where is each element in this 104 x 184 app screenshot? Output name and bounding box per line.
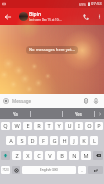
staticText: H bbox=[62, 137, 67, 145]
button[interactable]: M bbox=[81, 151, 91, 160]
staticText: 69% bbox=[79, 2, 87, 7]
staticText: R bbox=[37, 122, 41, 130]
button[interactable]: Q bbox=[1, 122, 10, 130]
staticText: W bbox=[14, 122, 20, 130]
staticText: S bbox=[20, 137, 24, 145]
button[interactable]: Profile photo bbox=[19, 12, 28, 21]
staticText: last seen Dec 15 at 10:... bbox=[29, 18, 62, 22]
staticText: Bipin bbox=[29, 11, 42, 18]
button[interactable]: Attach bbox=[81, 96, 91, 106]
staticText: Message bbox=[12, 98, 32, 104]
staticText: L bbox=[93, 137, 96, 145]
staticText: P bbox=[97, 122, 101, 130]
button[interactable]: Call bbox=[80, 11, 92, 23]
button[interactable]: Z bbox=[12, 151, 21, 160]
staticText: ?123 bbox=[2, 168, 9, 172]
button[interactable]: C bbox=[34, 151, 43, 160]
button[interactable]: Ya bbox=[0, 108, 30, 119]
button[interactable]: J bbox=[70, 136, 78, 145]
staticText: V bbox=[48, 152, 52, 160]
button[interactable]: P bbox=[95, 122, 103, 130]
button[interactable]: K bbox=[80, 136, 88, 145]
staticText: A bbox=[9, 137, 13, 145]
button[interactable]: More options bbox=[94, 8, 104, 25]
button[interactable]: No messages here yet... bbox=[26, 46, 78, 54]
staticText: 07:53 bbox=[91, 1, 102, 7]
button[interactable]: D bbox=[28, 136, 37, 145]
button[interactable]: Back bbox=[0, 8, 16, 25]
button[interactable]: Enter bbox=[88, 166, 103, 174]
staticText: O bbox=[87, 122, 92, 130]
staticText: E bbox=[26, 122, 30, 130]
button[interactable]: Backspace bbox=[93, 151, 103, 160]
button[interactable]: Yes bbox=[63, 108, 94, 119]
staticText: B bbox=[60, 152, 64, 160]
staticText: English (UK) bbox=[40, 168, 58, 172]
staticText: T bbox=[47, 122, 51, 130]
button[interactable]: . bbox=[78, 166, 86, 174]
button[interactable]: N bbox=[69, 151, 79, 160]
button[interactable]: I bbox=[75, 122, 83, 130]
button[interactable]: Shift bbox=[1, 151, 10, 160]
staticText: N bbox=[72, 152, 77, 160]
button[interactable]: More suggestions bbox=[95, 108, 104, 119]
button[interactable]: G bbox=[50, 136, 58, 145]
staticText: Yes bbox=[75, 111, 82, 117]
button[interactable]: F bbox=[39, 136, 48, 145]
button[interactable]: T bbox=[45, 122, 53, 130]
button[interactable]: Settings bbox=[12, 166, 20, 174]
staticText: D bbox=[30, 137, 35, 145]
button[interactable]: Emoji bbox=[1, 96, 11, 106]
staticText: U bbox=[67, 122, 72, 130]
button[interactable]: O bbox=[85, 122, 93, 130]
button[interactable]: Y bbox=[55, 122, 63, 130]
staticText: M bbox=[83, 152, 89, 160]
staticText: G bbox=[52, 137, 57, 145]
staticText: F bbox=[42, 137, 45, 145]
staticText: X bbox=[26, 152, 30, 160]
staticText: Ya bbox=[13, 111, 18, 117]
button[interactable]: E bbox=[23, 122, 32, 130]
staticText: . bbox=[81, 166, 83, 174]
button[interactable]: ?123 bbox=[1, 166, 10, 174]
button[interactable]: R bbox=[34, 122, 43, 130]
staticText: Y bbox=[57, 122, 61, 130]
staticText: I bbox=[78, 122, 80, 130]
button[interactable]: S bbox=[17, 136, 26, 145]
button[interactable]: English (UK) bbox=[22, 166, 76, 174]
button[interactable]: H bbox=[60, 136, 68, 145]
button[interactable]: U bbox=[65, 122, 73, 130]
staticText: C bbox=[37, 152, 41, 160]
button[interactable]: B bbox=[57, 151, 67, 160]
button[interactable]: Bipin bbox=[29, 11, 62, 22]
button[interactable]: A bbox=[6, 136, 15, 145]
staticText: No messages here yet... bbox=[29, 47, 75, 53]
button[interactable]: V bbox=[45, 151, 55, 160]
button[interactable]: X bbox=[23, 151, 32, 160]
button[interactable]: W bbox=[12, 122, 21, 130]
staticText: Z bbox=[15, 152, 19, 160]
staticText: Q bbox=[3, 122, 8, 130]
staticText: K bbox=[82, 137, 86, 145]
button[interactable]: L bbox=[90, 136, 98, 145]
button[interactable]: Camera bbox=[91, 96, 101, 106]
staticText: J bbox=[73, 137, 75, 145]
